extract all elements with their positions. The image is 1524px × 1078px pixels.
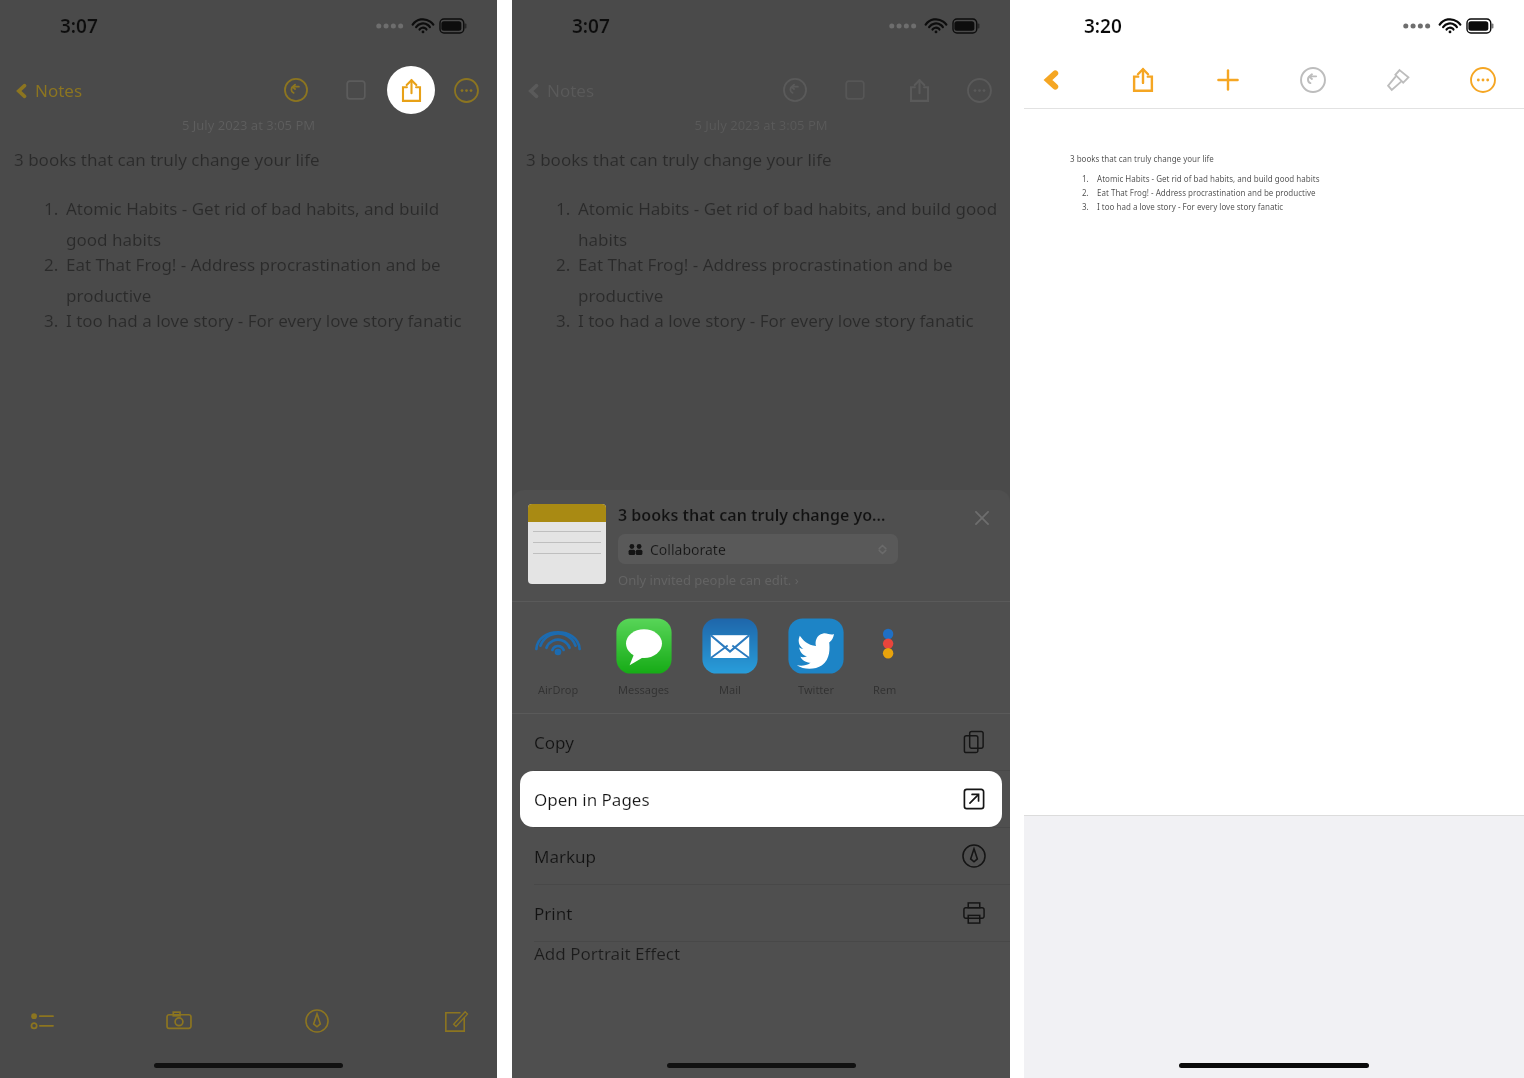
staticText: Print (534, 902, 573, 925)
staticText: Markup (534, 845, 597, 868)
staticText: Notes (35, 79, 83, 102)
staticText: Copy (534, 731, 574, 754)
staticText: Messages (618, 682, 670, 697)
button[interactable]: Undo (778, 73, 812, 107)
staticText: 3 books that can truly change your life (1070, 153, 1214, 164)
button[interactable]: Format (1379, 61, 1417, 99)
staticText: 3. (44, 309, 66, 332)
button[interactable]: Twitter (786, 616, 846, 697)
button[interactable]: Markup (297, 1001, 337, 1041)
button[interactable]: Add Portrait Effect (512, 942, 1010, 972)
button[interactable]: Share (902, 73, 936, 107)
button[interactable]: Undo (279, 73, 313, 107)
staticText: Atomic Habits - Get rid of bad habits, a… (66, 197, 485, 251)
staticText: 3:20 (1084, 13, 1122, 39)
button[interactable]: Back (1042, 62, 1078, 98)
button[interactable]: More (1464, 61, 1502, 99)
staticText: Only invited people can edit. › (618, 571, 799, 589)
staticText: Atomic Habits - Get rid of bad habits, a… (578, 197, 998, 251)
staticText: AirDrop (538, 682, 579, 697)
staticText: 3 books that can truly change your life (14, 148, 320, 171)
staticText: 2. (556, 253, 578, 276)
button[interactable]: Notes (12, 73, 85, 108)
button[interactable]: Share (387, 66, 435, 114)
button[interactable]: Compose (838, 73, 872, 107)
button[interactable]: Notes (524, 73, 597, 108)
staticText: I too had a love story - For every love … (66, 309, 462, 332)
button[interactable]: Copy (512, 714, 1010, 770)
staticText: I too had a love story - For every love … (578, 309, 974, 332)
staticText: Twitter (798, 682, 835, 697)
staticText: 3:07 (60, 13, 98, 39)
button[interactable]: More (962, 73, 996, 107)
staticText: 1. (556, 197, 578, 220)
button[interactable]: Undo (1294, 61, 1332, 99)
button[interactable]: Collaborate (618, 534, 898, 564)
button[interactable]: More (449, 73, 483, 107)
staticText: 3. I too had a love story - For every lo… (1082, 201, 1284, 212)
button[interactable]: Open in Pages (520, 771, 1002, 827)
staticText: Open in Pages (534, 788, 650, 811)
staticText: Rem (873, 682, 897, 697)
staticText: 3 books that can truly change your life (526, 148, 832, 171)
button[interactable]: Markup (512, 828, 1010, 884)
staticText: Notes (547, 79, 595, 102)
button[interactable]: Share (1124, 61, 1162, 99)
button[interactable]: Insert (1209, 61, 1247, 99)
staticText: Mail (719, 682, 741, 697)
staticText: 1. (44, 197, 66, 220)
staticText: 3. (556, 309, 578, 332)
staticText: 2. (44, 253, 66, 276)
button[interactable]: New note (435, 1001, 475, 1041)
staticText: 3:07 (572, 13, 610, 39)
staticText: Eat That Frog! - Address procrastination… (66, 253, 485, 307)
staticText: 2. Eat That Frog! - Address procrastinat… (1082, 187, 1316, 198)
button[interactable]: Checklist (22, 1001, 62, 1041)
staticText: Add Portrait Effect (534, 942, 681, 965)
button[interactable]: Messages (614, 616, 674, 697)
button[interactable]: Reminders (872, 616, 898, 676)
staticText: 1. Atomic Habits - Get rid of bad habits… (1082, 173, 1320, 184)
staticText: 3 books that can truly change yo... (618, 504, 886, 526)
button[interactable]: Close (968, 504, 996, 532)
button[interactable]: Camera (159, 1001, 199, 1041)
button[interactable]: Mail (700, 616, 760, 697)
button[interactable]: Print (512, 885, 1010, 941)
staticText: Eat That Frog! - Address procrastination… (578, 253, 998, 307)
staticText: Collaborate (650, 540, 726, 559)
button[interactable]: Compose (339, 73, 373, 107)
button[interactable]: AirDrop (528, 616, 588, 697)
